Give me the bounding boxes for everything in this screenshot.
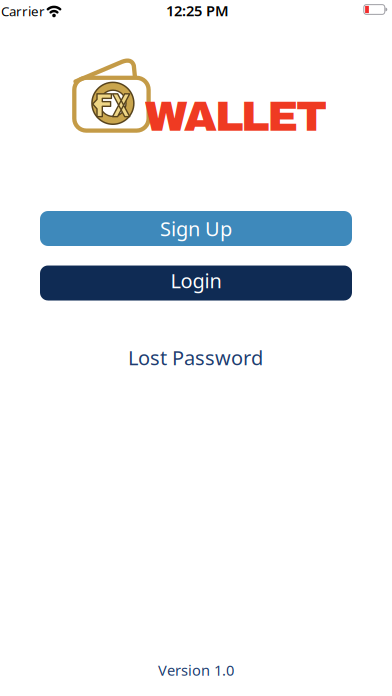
staticText: Login bbox=[170, 267, 221, 294]
staticText: WALLET bbox=[145, 93, 327, 140]
staticText: Sign Up bbox=[160, 215, 232, 242]
staticText: Carrier bbox=[1, 2, 45, 20]
button[interactable]: Sign Up bbox=[40, 211, 352, 246]
button[interactable]: Login bbox=[40, 265, 352, 300]
staticText: Lost Password bbox=[128, 344, 263, 371]
staticText: Version 1.0 bbox=[158, 660, 234, 680]
button[interactable]: Lost Password bbox=[128, 344, 263, 371]
staticText: 12:25 PM bbox=[166, 1, 229, 20]
